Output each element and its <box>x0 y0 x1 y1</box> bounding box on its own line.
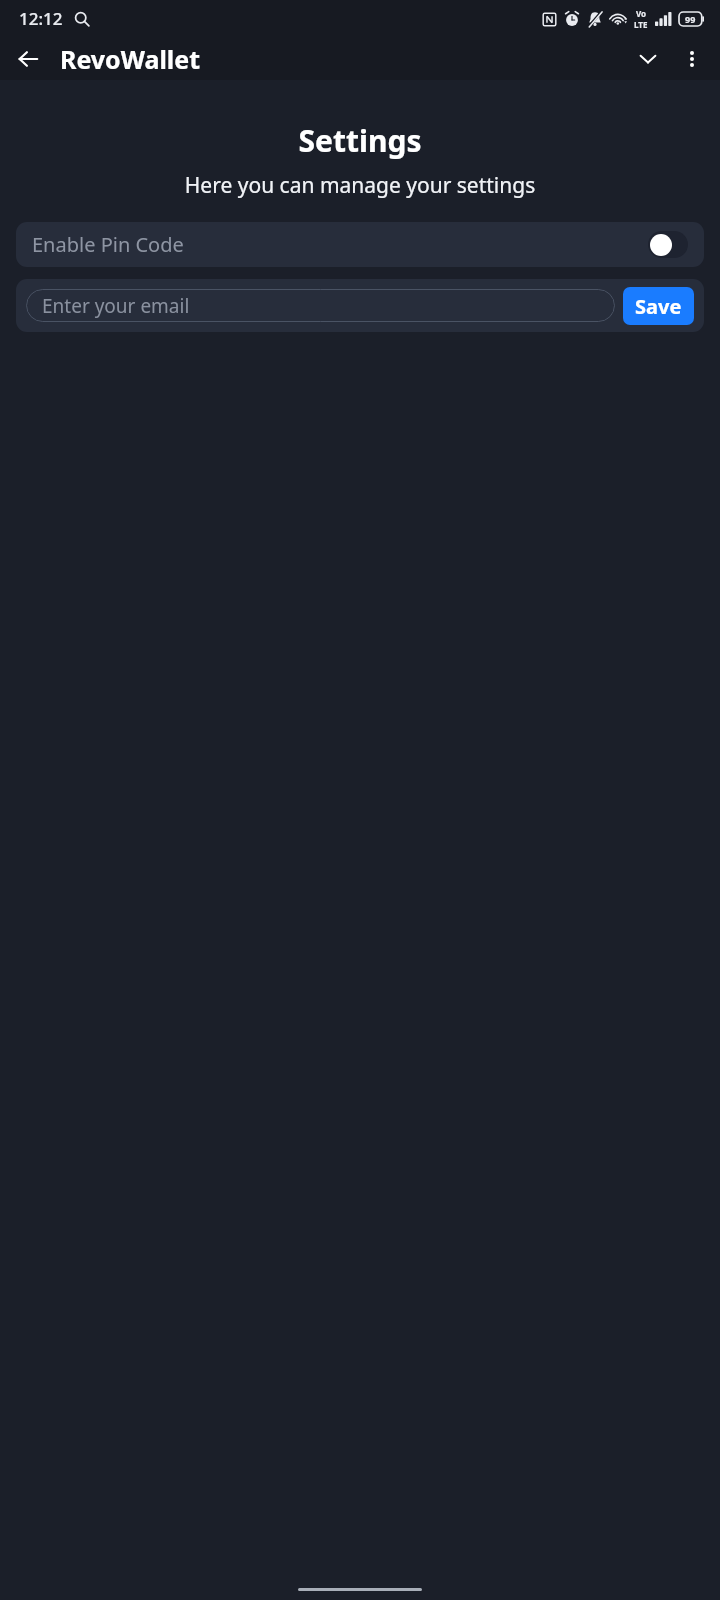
staticText: Vo <box>636 8 647 19</box>
staticText: Enable Pin Code <box>32 231 648 258</box>
staticText: Enter your email <box>42 293 190 319</box>
button[interactable]: Enable Pin Code <box>16 222 704 267</box>
staticText: Save <box>635 293 682 320</box>
staticText: 99 <box>685 13 696 25</box>
button[interactable]: Back <box>8 39 48 79</box>
button[interactable]: Enter your email <box>26 289 615 322</box>
button[interactable]: Expand <box>626 37 670 80</box>
staticText: Settings <box>0 120 720 161</box>
button[interactable]: Save <box>623 287 694 325</box>
staticText: 12:12 <box>19 7 63 30</box>
button[interactable]: Enable Pin Code toggle <box>648 231 688 258</box>
button[interactable]: More options <box>670 37 714 80</box>
staticText: LTE <box>634 19 648 30</box>
staticText: RevoWallet <box>60 42 201 76</box>
staticText: Here you can manage your settings <box>0 171 720 200</box>
